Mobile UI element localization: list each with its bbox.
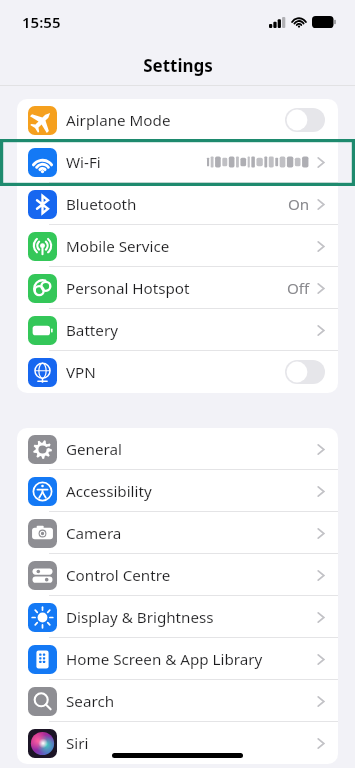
staticText: Home Screen & App Library: [66, 649, 263, 670]
button[interactable]: General: [17, 428, 338, 470]
button[interactable]: Personal Hotspot: [17, 267, 338, 309]
button[interactable]: Bluetooth: [17, 183, 338, 225]
staticText: Off: [287, 278, 310, 299]
button[interactable]: Control Centre: [17, 554, 338, 596]
staticText: VPN: [66, 362, 96, 383]
button[interactable]: Home Screen & App Library: [17, 638, 338, 680]
button[interactable]: Accessibility: [17, 470, 338, 512]
staticText: Personal Hotspot: [66, 278, 190, 299]
button[interactable]: Search: [17, 680, 338, 722]
staticText: Siri: [66, 733, 89, 754]
button[interactable]: Battery: [17, 309, 338, 351]
button[interactable]: Display & Brightness: [17, 596, 338, 638]
staticText: Accessibility: [66, 481, 152, 502]
button[interactable]: VPN: [17, 351, 338, 393]
staticText: Mobile Service: [66, 236, 170, 257]
staticText: Display & Brightness: [66, 607, 214, 628]
staticText: Wi-Fi: [66, 152, 101, 173]
staticText: On: [288, 194, 310, 215]
staticText: Settings: [143, 54, 213, 77]
staticText: Camera: [66, 523, 122, 544]
staticText: General: [66, 439, 122, 460]
button[interactable]: Airplane Mode: [17, 99, 338, 141]
button[interactable]: Camera: [17, 512, 338, 554]
button[interactable]: Mobile Service: [17, 225, 338, 267]
staticText: Airplane Mode: [66, 110, 171, 131]
button[interactable]: Wi-Fi: [17, 141, 338, 183]
button[interactable]: Toggle: [285, 108, 325, 132]
button[interactable]: Siri: [17, 722, 338, 764]
staticText: Search: [66, 691, 115, 712]
staticText: 15:55: [22, 12, 61, 32]
staticText: Control Centre: [66, 565, 171, 586]
button[interactable]: Toggle: [285, 360, 325, 384]
staticText: Bluetooth: [66, 194, 137, 215]
staticText: Battery: [66, 320, 118, 341]
